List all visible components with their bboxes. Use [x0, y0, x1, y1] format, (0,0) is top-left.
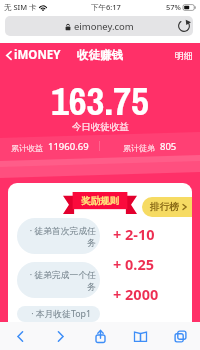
- button[interactable]: Back: [8, 324, 32, 348]
- staticText: 明细: [175, 50, 193, 61]
- staticText: 下午6:17: [91, 2, 121, 12]
- staticText: 今日收徒收益: [72, 121, 129, 133]
- staticText: eimoney.com: [74, 20, 134, 33]
- staticText: + 0.25: [113, 254, 155, 274]
- button[interactable]: 奖励规则: [63, 192, 137, 214]
- staticText: 累计徒弟: [123, 143, 155, 153]
- staticText: iMONEY: [14, 47, 61, 63]
- staticText: 11960.69: [48, 140, 89, 153]
- button[interactable]: · 徒弟完成一个任务: [17, 262, 100, 298]
- button[interactable]: Forward: [48, 324, 72, 348]
- staticText: + 2000: [113, 284, 159, 304]
- staticText: 163.75: [51, 75, 149, 128]
- staticText: + 2-10: [113, 224, 155, 244]
- button[interactable]: Reload: [177, 19, 191, 33]
- staticText: 累计收益: [11, 143, 43, 153]
- button[interactable]: Back to iMONEY: [5, 47, 61, 63]
- staticText: · 徒弟完成一个任务: [26, 269, 96, 292]
- staticText: 57%: [166, 2, 181, 12]
- button[interactable]: Bookmarks: [128, 324, 152, 348]
- staticText: 无 SIM 卡: [4, 2, 37, 12]
- button[interactable]: eimoney.com: [5, 16, 193, 36]
- button[interactable]: Tabs: [168, 324, 192, 348]
- button[interactable]: 排行榜: [142, 197, 192, 217]
- button[interactable]: · 本月收徒Top1: [17, 306, 100, 322]
- button[interactable]: Share: [88, 324, 112, 348]
- staticText: · 徒弟首次完成任务: [26, 225, 96, 248]
- staticText: 805: [160, 140, 177, 153]
- button[interactable]: 明细: [174, 50, 194, 61]
- staticText: · 本月收徒Top1: [31, 308, 91, 320]
- staticText: 收徒赚钱: [77, 48, 123, 62]
- staticText: 奖励规则: [81, 195, 119, 207]
- button[interactable]: · 徒弟首次完成任务: [17, 218, 100, 254]
- staticText: 排行榜: [150, 201, 179, 213]
